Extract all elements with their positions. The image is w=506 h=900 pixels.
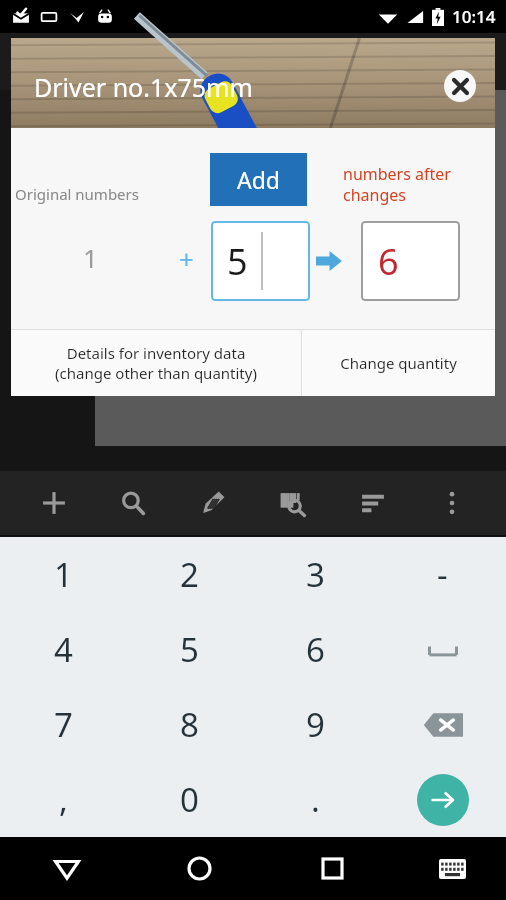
staticText: . bbox=[311, 777, 320, 822]
staticText: Original numbers bbox=[15, 184, 139, 204]
staticText: 6 bbox=[378, 237, 399, 286]
button[interactable]: 5 bbox=[126, 612, 252, 687]
button[interactable]: Close bbox=[444, 70, 476, 102]
staticText: 2 bbox=[180, 552, 199, 597]
button[interactable]: Home bbox=[133, 837, 266, 900]
button[interactable]: . bbox=[252, 762, 379, 837]
staticText: 3 bbox=[306, 552, 325, 597]
staticText: Details for inventory data (change other… bbox=[55, 343, 257, 383]
staticText: 5 bbox=[227, 237, 248, 286]
button[interactable]: 9 bbox=[252, 687, 379, 762]
button[interactable]: Edit bbox=[187, 477, 239, 529]
button[interactable]: - bbox=[379, 537, 506, 612]
staticText: Change quantity bbox=[340, 353, 457, 373]
button[interactable]: 1 bbox=[0, 537, 126, 612]
staticText: 7 bbox=[54, 702, 73, 747]
button[interactable]: 8 bbox=[126, 687, 252, 762]
button[interactable]: 7 bbox=[0, 687, 126, 762]
staticText: , bbox=[59, 777, 68, 822]
staticText: numbers after changes bbox=[343, 163, 451, 206]
staticText: 4 bbox=[54, 627, 73, 672]
staticText: 1 bbox=[83, 240, 98, 275]
staticText: 0 bbox=[180, 777, 199, 822]
button[interactable]: Recents bbox=[266, 837, 399, 900]
button[interactable]: Search bbox=[107, 477, 159, 529]
button[interactable]: Scan barcode bbox=[267, 477, 319, 529]
button[interactable]: Space bbox=[379, 612, 506, 687]
button[interactable]: Details for inventory data (change other… bbox=[11, 330, 301, 396]
button[interactable]: 4 bbox=[0, 612, 126, 687]
button[interactable]: Enter bbox=[379, 762, 506, 837]
staticText: 6 bbox=[306, 627, 325, 672]
button[interactable]: Add bbox=[210, 153, 307, 206]
staticText: 10:14 bbox=[452, 5, 496, 28]
staticText: 1 bbox=[54, 552, 73, 597]
button[interactable]: Backspace bbox=[379, 687, 506, 762]
button[interactable]: 0 bbox=[126, 762, 252, 837]
button[interactable]: 6 bbox=[252, 612, 379, 687]
button[interactable]: Back bbox=[0, 837, 133, 900]
button[interactable]: 2 bbox=[126, 537, 252, 612]
staticText: Inventory list bbox=[66, 48, 190, 75]
staticText: Add bbox=[237, 164, 280, 195]
button[interactable]: 3 bbox=[252, 537, 379, 612]
button[interactable]: More options bbox=[426, 477, 478, 529]
staticText: 8 bbox=[180, 702, 199, 747]
button[interactable]: 5 bbox=[211, 221, 310, 301]
staticText: Driver no.1x75mm bbox=[34, 70, 253, 104]
staticText: - bbox=[437, 552, 448, 597]
button[interactable]: Keyboard bbox=[399, 837, 506, 900]
button[interactable]: Change quantity bbox=[302, 330, 495, 396]
staticText: 5 bbox=[180, 627, 199, 672]
button[interactable]: Sort bbox=[347, 477, 399, 529]
button[interactable]: Add bbox=[28, 477, 80, 529]
button[interactable]: , bbox=[0, 762, 126, 837]
staticText: + bbox=[179, 241, 194, 276]
staticText: 9 bbox=[306, 702, 325, 747]
